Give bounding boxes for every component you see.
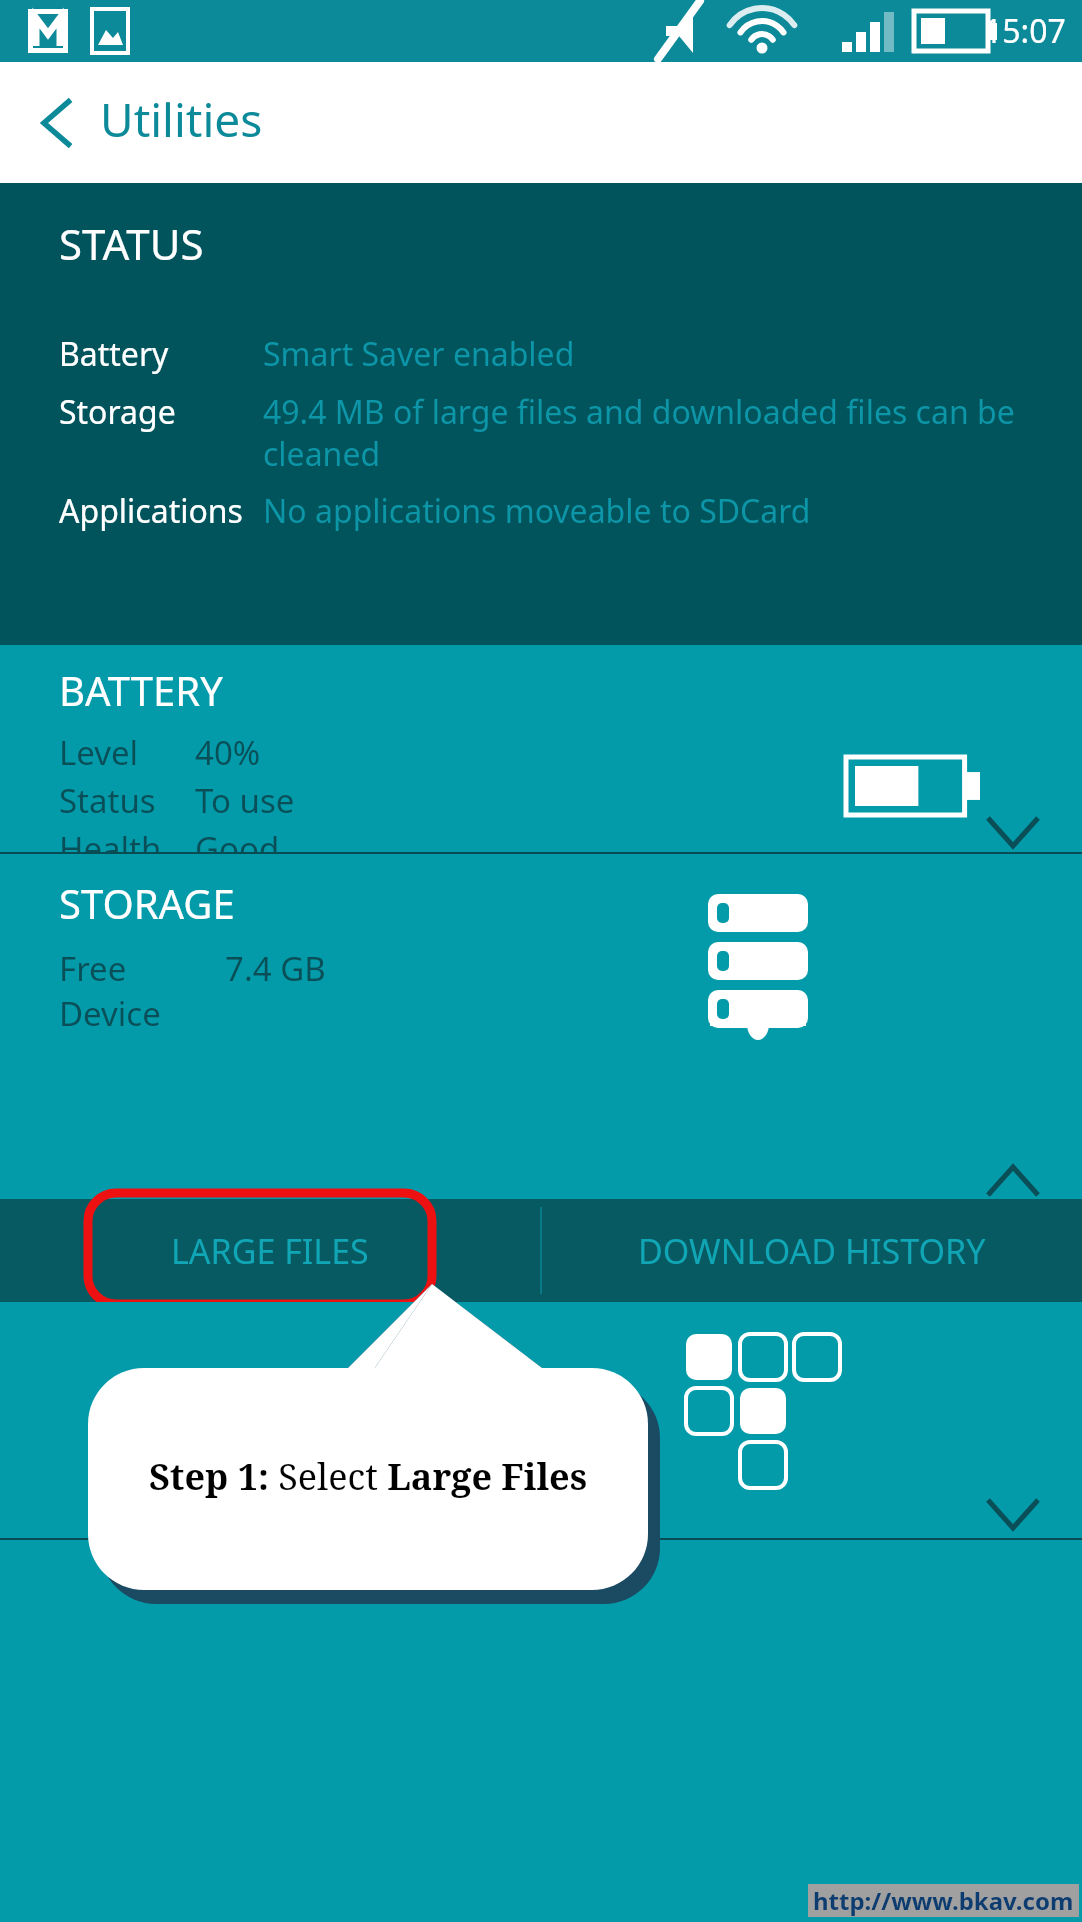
staticText: http://www.bkav.com xyxy=(813,1884,1074,1917)
button[interactable]: DOWNLOAD HISTORY xyxy=(542,1199,1082,1302)
button[interactable]: BATTERY xyxy=(0,645,1082,852)
button[interactable] xyxy=(0,1302,1082,1538)
staticText: Step 1: Select Large Files xyxy=(88,1452,648,1501)
staticText: Status xyxy=(59,778,195,823)
staticText: Good xyxy=(195,826,280,852)
staticText: STATUS xyxy=(59,215,204,272)
staticText: Smart Saver enabled xyxy=(263,332,575,376)
staticText: Storage xyxy=(59,390,263,434)
staticText: No applications moveable to SDCard xyxy=(263,489,811,533)
staticText: 49.4 MB of large files and downloaded fi… xyxy=(263,390,1046,475)
button[interactable]: LARGE FILES xyxy=(0,1199,540,1302)
staticText: Health xyxy=(59,826,195,852)
staticText: BATTERY xyxy=(59,663,223,717)
staticText: 40% xyxy=(195,730,261,775)
staticText: Battery xyxy=(59,332,263,376)
staticText: LARGE FILES xyxy=(171,1228,369,1274)
staticText: To use xyxy=(195,778,295,823)
staticText: Free Device xyxy=(59,946,225,1036)
staticText: 15:07 xyxy=(984,9,1066,53)
staticText: DOWNLOAD HISTORY xyxy=(638,1228,986,1274)
staticText: STORAGE xyxy=(59,876,235,930)
staticText: Utilities xyxy=(100,88,263,151)
staticText: Applications xyxy=(59,489,263,533)
staticText: Level xyxy=(59,730,195,775)
button[interactable]: Back xyxy=(30,94,88,152)
staticText: 7.4 GB xyxy=(225,946,326,991)
button[interactable]: STORAGE xyxy=(0,854,1082,1199)
